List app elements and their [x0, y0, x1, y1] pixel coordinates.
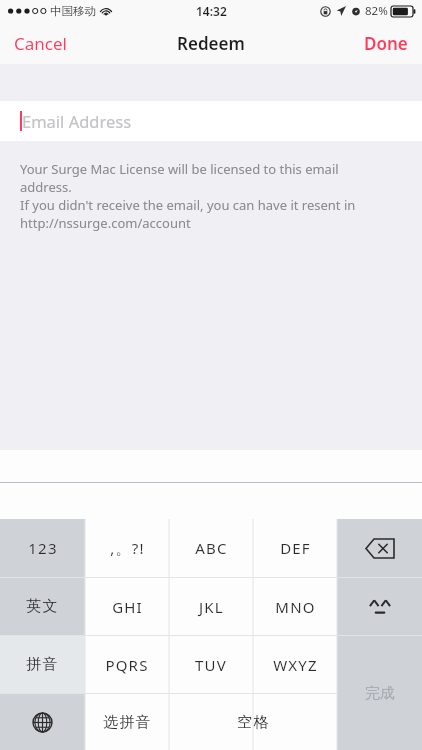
button[interactable]: WXYZ [253, 636, 337, 693]
button[interactable]: PQRS [85, 636, 169, 693]
staticText: 82% [365, 3, 388, 19]
button[interactable]: Cancel [0, 22, 81, 64]
staticText: Done [364, 32, 408, 55]
button[interactable]: Email Address [0, 101, 422, 141]
staticText: 123 [28, 538, 58, 558]
staticText: http://nssurge.com/account [20, 214, 191, 232]
staticText: 空格 [237, 713, 270, 732]
button[interactable]: 123 [0, 519, 85, 577]
staticText: JKL [199, 597, 224, 617]
staticText: 拼音 [26, 655, 59, 674]
staticText: 选拼音 [103, 713, 152, 732]
staticText: Email Address [22, 110, 132, 132]
button[interactable]: 完成 [337, 636, 422, 750]
staticText: Cancel [14, 32, 67, 55]
button[interactable]: Done [350, 22, 422, 64]
button[interactable]: TUV [169, 636, 253, 693]
button[interactable]: MNO [253, 578, 337, 635]
button[interactable]: DEF [253, 519, 337, 577]
staticText: WXYZ [273, 655, 318, 675]
button[interactable]: GHI [85, 578, 169, 635]
button[interactable]: ,。?! [85, 519, 169, 577]
staticText: ABC [195, 538, 228, 558]
button[interactable]: 空格 [169, 694, 337, 750]
staticText: address. [20, 178, 72, 196]
staticText: ,。?! [110, 538, 145, 558]
button[interactable]: 选拼音 [85, 694, 169, 750]
button[interactable]: Emoji [337, 578, 422, 635]
button[interactable]: Keyboard language [0, 694, 85, 750]
button[interactable]: ABC [169, 519, 253, 577]
staticText: 14:32 [196, 3, 227, 19]
staticText: MNO [275, 597, 316, 617]
button[interactable]: JKL [169, 578, 253, 635]
staticText: DEF [280, 538, 311, 558]
staticText: TUV [195, 655, 227, 675]
button[interactable]: 英文 [0, 578, 85, 635]
staticText: 中国移动 [50, 4, 96, 18]
staticText: Redeem [177, 32, 245, 55]
staticText: PQRS [105, 655, 149, 675]
staticText: GHI [112, 597, 143, 617]
button[interactable]: 拼音 [0, 636, 85, 693]
staticText: 英文 [26, 597, 59, 616]
staticText: 完成 [365, 684, 395, 703]
staticText: If you didn't receive the email, you can… [20, 196, 356, 214]
staticText: Your Surge Mac License will be licensed … [20, 160, 339, 178]
button[interactable]: Delete [337, 519, 422, 577]
